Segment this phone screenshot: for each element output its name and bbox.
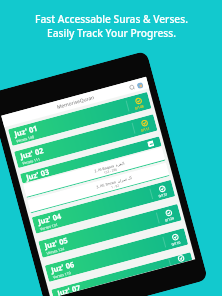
staticText: Verses 131 [39, 222, 59, 231]
button[interactable]: Juz' 06 [45, 228, 188, 282]
staticText: Verses 148 [16, 134, 35, 144]
staticText: Juz' 07 [56, 282, 81, 296]
button[interactable]: 2. Al-Baqara البقرة [23, 147, 166, 198]
button[interactable]: Search [127, 83, 136, 92]
staticText: 0/149 [177, 260, 187, 264]
staticText: 0/131 [158, 191, 169, 198]
button[interactable]: 3. Ali 'Imran آل عمران [27, 162, 170, 213]
staticText: 3. Ali 'Imran آل عمران [95, 175, 132, 189]
button[interactable]: Juz' 01 [8, 92, 151, 146]
staticText: Juz' 01 [13, 123, 39, 139]
button[interactable]: Juz' 07 [51, 252, 192, 296]
staticText: Juz' 03 [25, 166, 51, 182]
button[interactable]: Profile [136, 82, 144, 89]
staticText: 0/124 [164, 215, 175, 223]
staticText: 0/111 [140, 125, 151, 133]
staticText: Verses 110 [52, 270, 72, 280]
button[interactable]: Juz' 05 [38, 204, 182, 258]
staticText: MemoriseQuran [56, 94, 96, 111]
staticText: Verses 111 [22, 156, 41, 166]
staticText: Juz' 06 [50, 259, 76, 275]
staticText: Easily Track Your Progress. [47, 26, 176, 40]
staticText: Fast Accessable Suras & Verses. [35, 12, 188, 26]
staticText: 1 - 92 [110, 183, 120, 190]
staticText: Juz' 02 [19, 145, 45, 161]
staticText: Verses 124 [46, 246, 65, 256]
button[interactable]: Juz' 04 [32, 180, 175, 234]
button[interactable]: Juz' 03 [20, 136, 162, 184]
staticText: 153 - 286 [103, 167, 118, 175]
staticText: 2. Al-Baqara البقرة [93, 160, 125, 173]
staticText: Juz' 05 [43, 235, 69, 251]
staticText: 0/110 [171, 239, 182, 247]
button[interactable]: Juz' 02 [14, 114, 157, 168]
staticText: 0/148 [134, 103, 145, 111]
staticText: Juz' 04 [37, 211, 63, 227]
